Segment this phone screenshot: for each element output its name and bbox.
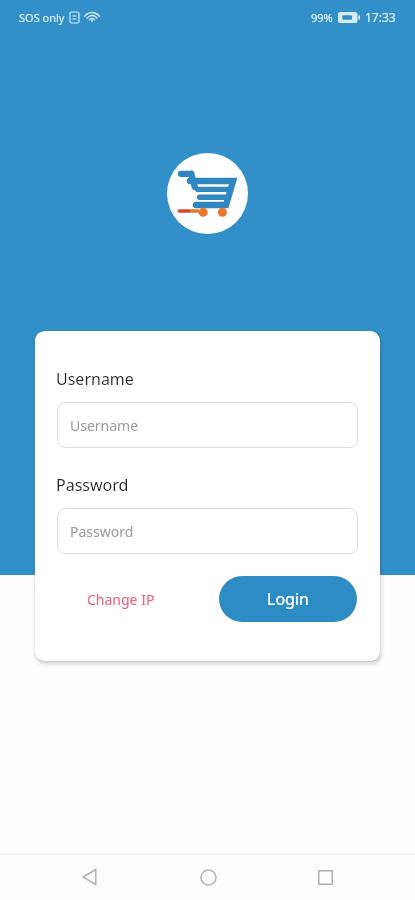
staticText: Password xyxy=(70,522,134,541)
staticText: Change IP xyxy=(87,590,155,609)
staticText: Password xyxy=(56,474,129,496)
button[interactable]: Back xyxy=(62,854,118,900)
staticText: SOS only xyxy=(19,10,65,25)
staticText: Login xyxy=(267,588,309,610)
staticText: Username xyxy=(70,416,139,435)
staticText: Username xyxy=(56,368,134,390)
staticText: 17:33 xyxy=(365,9,396,25)
staticText: 99% xyxy=(311,10,333,25)
button[interactable]: Login xyxy=(219,576,357,622)
button[interactable]: Username xyxy=(57,402,358,448)
button[interactable]: Change IP xyxy=(79,581,163,618)
button[interactable]: Recent apps xyxy=(297,854,353,900)
button[interactable]: Home xyxy=(180,854,236,900)
button[interactable]: Password xyxy=(57,508,358,554)
